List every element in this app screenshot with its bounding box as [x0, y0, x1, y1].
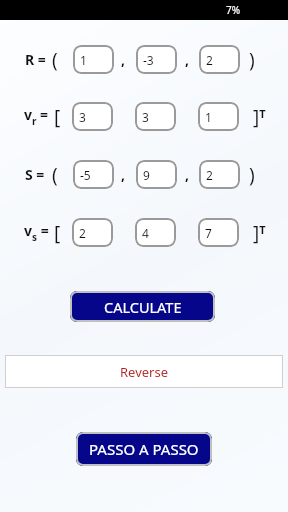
staticText: PASSO A PASSO [89, 439, 199, 459]
staticText: [ [54, 220, 61, 246]
staticText: CALCULATE [104, 297, 182, 317]
staticText: , [121, 50, 125, 69]
staticText: ]T [253, 220, 266, 246]
button[interactable]: 2 [199, 160, 240, 189]
staticText: [ [54, 104, 61, 130]
button[interactable]: 2 [199, 45, 240, 74]
staticText: 2 [206, 167, 213, 183]
button[interactable]: -5 [73, 160, 114, 189]
staticText: 3 [142, 109, 149, 125]
staticText: S = [25, 165, 45, 184]
staticText: ( [52, 162, 58, 188]
staticText: , [185, 165, 189, 184]
staticText: 2 [79, 225, 86, 241]
staticText: , [185, 50, 189, 69]
staticText: -3 [143, 52, 154, 68]
button[interactable]: -3 [136, 45, 177, 74]
staticText: Reverse [120, 363, 169, 381]
staticText: R = [25, 50, 46, 69]
button[interactable]: 4 [135, 218, 176, 247]
button[interactable]: Reverse [5, 355, 283, 388]
staticText: -5 [80, 167, 91, 183]
staticText: 7 [205, 225, 212, 241]
staticText: 9 [143, 167, 150, 183]
staticText: , [121, 165, 125, 184]
button[interactable]: 7 [198, 218, 239, 247]
button[interactable]: 3 [72, 102, 113, 131]
staticText: 3 [79, 109, 86, 125]
button[interactable]: CALCULATE [70, 291, 215, 322]
staticText: 4 [142, 225, 149, 241]
staticText: 2 [206, 52, 213, 68]
button[interactable]: PASSO A PASSO [76, 432, 212, 466]
button[interactable]: 1 [73, 45, 114, 74]
staticText: 1 [80, 52, 87, 68]
staticText: 1 [205, 109, 212, 125]
staticText: ) [249, 47, 255, 73]
staticText: 7% [226, 3, 241, 17]
staticText: ) [249, 162, 255, 188]
staticText: ]T [253, 104, 266, 130]
button[interactable]: 1 [198, 102, 239, 131]
button[interactable]: 3 [135, 102, 176, 131]
staticText: ( [52, 47, 58, 73]
staticText: vs = [24, 221, 53, 244]
button[interactable]: 9 [136, 160, 177, 189]
button[interactable]: 2 [72, 218, 113, 247]
staticText: vr = [24, 105, 52, 128]
